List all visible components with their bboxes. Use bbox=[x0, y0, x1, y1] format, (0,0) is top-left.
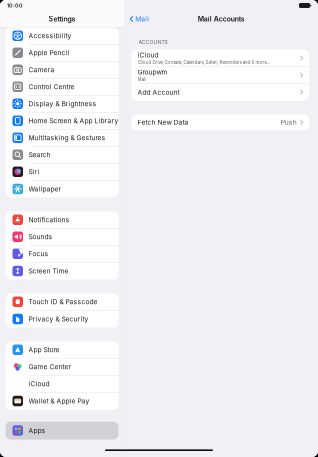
button[interactable]: Wallpaper bbox=[5, 180, 118, 197]
staticText: App Store bbox=[28, 346, 59, 354]
staticText: Groupwm bbox=[137, 68, 167, 76]
staticText: Push bbox=[281, 118, 297, 126]
button[interactable]: Apps bbox=[5, 421, 118, 439]
staticText: Accessibility bbox=[28, 32, 71, 40]
button[interactable]: Fetch New Data bbox=[131, 114, 309, 130]
staticText: Touch ID & Passcode bbox=[28, 298, 97, 306]
button[interactable]: iCloud bbox=[5, 375, 118, 392]
staticText: iCloud bbox=[137, 51, 158, 59]
staticText: Multitasking & Gestures bbox=[28, 134, 105, 142]
staticText: Siri bbox=[28, 168, 39, 176]
staticText: Display & Brightness bbox=[28, 100, 96, 108]
staticText: Sounds bbox=[28, 233, 52, 241]
staticText: Apps bbox=[28, 426, 45, 435]
staticText: Camera bbox=[28, 66, 54, 74]
staticText: Game Center bbox=[28, 363, 71, 371]
staticText: Focus bbox=[28, 250, 48, 258]
staticText: Apple Pencil bbox=[28, 49, 69, 57]
staticText: ACCOUNTS bbox=[138, 39, 167, 45]
staticText: Mail Accounts bbox=[198, 15, 245, 23]
button[interactable]: Home Screen & App Library bbox=[5, 112, 118, 129]
staticText: Add Account bbox=[137, 88, 179, 96]
button[interactable]: Search bbox=[5, 146, 118, 163]
staticText: Control Centre bbox=[28, 83, 74, 91]
staticText: iCloud Drive, Contacts, Calendars, Safar… bbox=[137, 60, 270, 65]
button[interactable]: Screen Time bbox=[5, 262, 118, 279]
button[interactable]: Siri bbox=[5, 163, 118, 180]
button[interactable]: Control Centre bbox=[5, 78, 118, 95]
button[interactable]: Apple Pencil bbox=[5, 44, 118, 61]
button[interactable]: Add Account bbox=[131, 84, 309, 101]
staticText: Screen Time bbox=[28, 267, 68, 275]
button[interactable]: Focus bbox=[5, 245, 118, 262]
button[interactable]: iCloud bbox=[131, 50, 309, 66]
staticText: Fetch New Data bbox=[137, 118, 188, 126]
staticText: Privacy & Security bbox=[28, 315, 88, 323]
button[interactable]: Display & Brightness bbox=[5, 95, 118, 112]
button[interactable]: Mail bbox=[124, 12, 149, 26]
staticText: Wallet & Apple Pay bbox=[28, 397, 89, 405]
staticText: Notifications bbox=[28, 216, 69, 224]
staticText: Search bbox=[28, 151, 50, 159]
button[interactable]: Privacy & Security bbox=[5, 310, 118, 327]
staticText: Mail bbox=[137, 77, 145, 82]
staticText: Mail bbox=[135, 15, 149, 23]
staticText: iCloud bbox=[28, 380, 49, 388]
button[interactable]: Game Center bbox=[5, 358, 118, 375]
staticText: Home Screen & App Library bbox=[28, 117, 118, 125]
button[interactable]: App Store bbox=[5, 341, 118, 358]
button[interactable]: Sounds bbox=[5, 228, 118, 245]
staticText: Settings bbox=[48, 15, 75, 23]
staticText: Wallpaper bbox=[28, 185, 61, 193]
button[interactable]: Camera bbox=[5, 61, 118, 78]
button[interactable]: Multitasking & Gestures bbox=[5, 129, 118, 146]
button[interactable]: Touch ID & Passcode bbox=[5, 293, 118, 310]
button[interactable]: Accessibility bbox=[5, 27, 118, 44]
button[interactable]: Notifications bbox=[5, 211, 118, 228]
button[interactable]: Wallet & Apple Pay bbox=[5, 392, 118, 409]
staticText: 10:00 bbox=[7, 2, 23, 9]
button[interactable]: Groupwm bbox=[131, 67, 309, 83]
